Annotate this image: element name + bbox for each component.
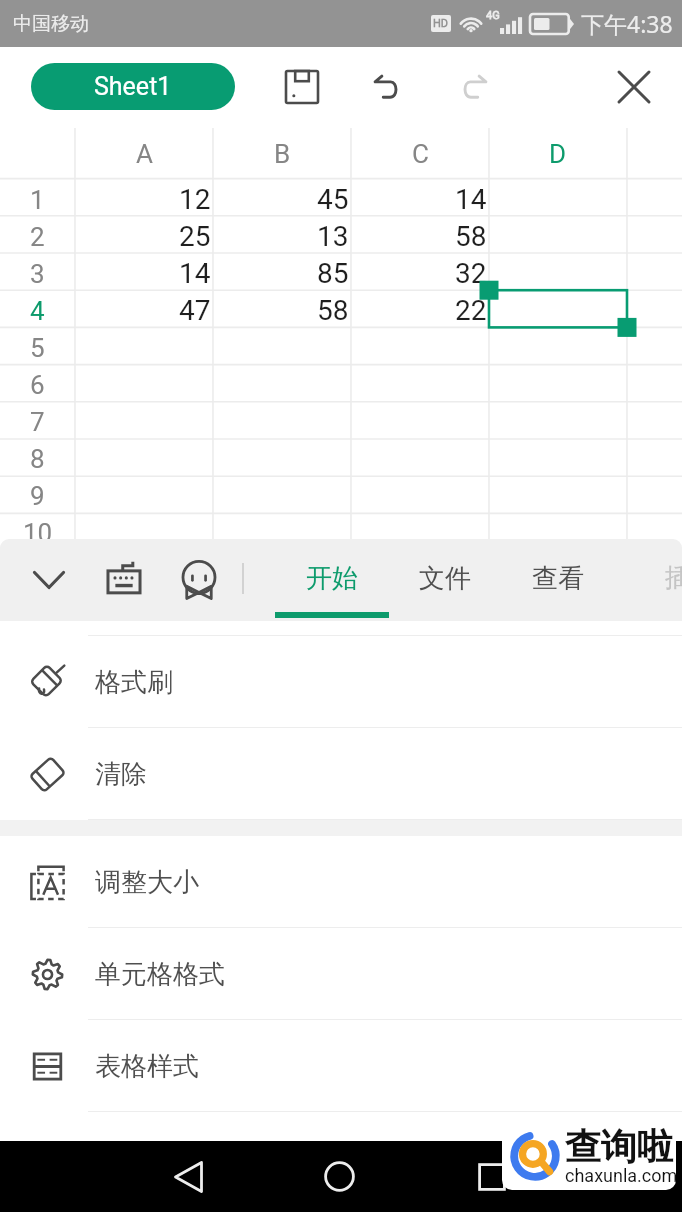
staticText: 清除 [95, 758, 147, 791]
button[interactable]: Collapse [18, 539, 80, 621]
button[interactable]: 开始 [275, 539, 389, 621]
staticText: 85 [317, 257, 349, 290]
button[interactable]: 单元格格式 [0, 928, 682, 1020]
staticText: 11 [23, 555, 53, 585]
staticText: 12 [179, 183, 211, 216]
staticText: 32 [455, 257, 487, 290]
button[interactable]: 格式刷 [0, 636, 682, 728]
button[interactable]: Assistant [168, 541, 230, 623]
staticText: 查看 [532, 562, 584, 595]
button[interactable]: 文件 [388, 539, 502, 621]
staticText: 58 [317, 294, 349, 327]
staticText: 单元格格式 [95, 958, 225, 991]
staticText: 25 [179, 220, 211, 253]
staticText: 7 [30, 407, 45, 437]
button[interactable]: Close [603, 56, 665, 118]
staticText: HD [433, 17, 449, 30]
button[interactable]: 查看 [501, 539, 615, 621]
staticText: 2 [30, 222, 45, 252]
button[interactable]: Save [271, 56, 333, 118]
staticText: 14 [455, 183, 487, 216]
staticText: 9 [30, 481, 45, 511]
staticText: 13 [317, 220, 349, 253]
staticText: 插 [665, 562, 682, 593]
button[interactable]: Recents [456, 1141, 528, 1212]
staticText: D [549, 139, 567, 169]
staticText: B [274, 139, 291, 169]
staticText: 47 [179, 294, 211, 327]
button[interactable]: Keyboard [93, 539, 155, 618]
staticText: 22 [455, 294, 487, 327]
staticText: 10 [23, 518, 53, 548]
staticText: chaxunla.com [565, 1165, 676, 1186]
button[interactable]: 插 [621, 539, 682, 621]
button[interactable]: Sheet1 [31, 63, 235, 110]
button[interactable]: Home [303, 1141, 375, 1212]
staticText: C [412, 139, 429, 169]
staticText: A [136, 139, 153, 169]
staticText: Sheet1 [94, 72, 172, 101]
staticText: 表格样式 [95, 1050, 199, 1083]
staticText: 格式刷 [95, 666, 173, 699]
button[interactable]: 表格样式 [0, 1020, 682, 1112]
staticText: 58 [455, 220, 487, 253]
staticText: 6 [30, 370, 45, 400]
staticText: 开始 [306, 562, 358, 595]
button[interactable]: 清除 [0, 728, 682, 820]
button[interactable]: Undo [357, 56, 419, 118]
staticText: 查询啦 [565, 1124, 673, 1169]
staticText: 文件 [419, 562, 471, 595]
staticText: 下午4:38 [581, 8, 673, 39]
staticText: 8 [30, 444, 45, 474]
staticText: 3 [30, 259, 45, 289]
staticText: 5 [30, 333, 45, 363]
staticText: 1 [30, 185, 45, 215]
staticText: 14 [179, 257, 211, 290]
button[interactable]: 调整大小 [0, 836, 682, 928]
staticText: 中国移动 [13, 12, 89, 36]
button[interactable]: Back [152, 1141, 224, 1212]
staticText: 45 [317, 183, 349, 216]
staticText: 4 [30, 296, 45, 326]
staticText: 4G [486, 9, 500, 22]
button[interactable]: Redo [442, 56, 504, 118]
staticText: 调整大小 [95, 866, 199, 899]
